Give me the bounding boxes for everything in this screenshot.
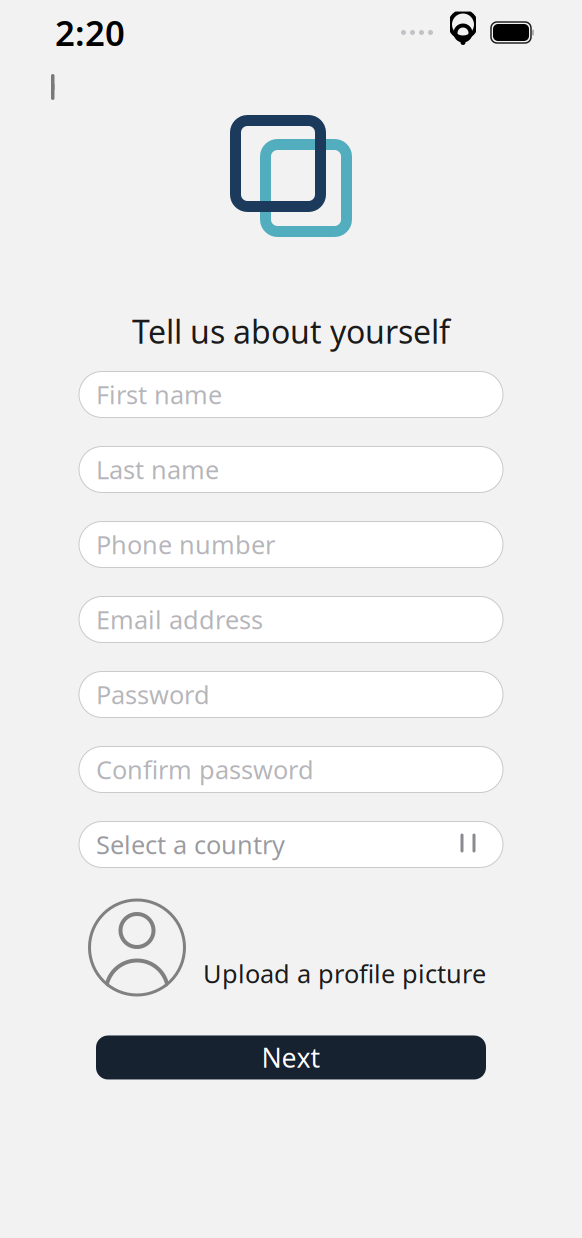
button[interactable]: Upload a profile picture <box>0 897 582 997</box>
button[interactable]: Next <box>96 1035 486 1079</box>
staticText: Tell us about yourself <box>132 310 450 352</box>
staticText: Last name <box>96 453 219 486</box>
staticText: Confirm password <box>96 753 314 786</box>
button[interactable]: Select a country <box>79 821 503 867</box>
staticText: Upload a profile picture <box>203 957 486 990</box>
staticText: First name <box>96 378 222 411</box>
staticText: Phone number <box>96 528 275 561</box>
staticText: 2:20 <box>55 9 125 55</box>
staticText: Select a country <box>96 828 285 861</box>
staticText: Password <box>96 678 210 711</box>
staticText: Email address <box>96 603 263 636</box>
staticText: Next <box>261 1040 320 1075</box>
button[interactable]: Back <box>32 64 78 110</box>
